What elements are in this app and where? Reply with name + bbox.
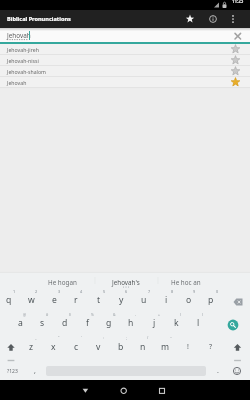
- button[interactable]: u: [133, 288, 155, 311]
- button[interactable]: c: [65, 335, 87, 358]
- staticText: ?: [209, 342, 213, 352]
- staticText: c: [74, 341, 79, 353]
- staticText: g: [106, 317, 112, 329]
- staticText: 7: [148, 289, 151, 294]
- button[interactable]: Jehovah-shalom: [0, 66, 250, 77]
- button[interactable]: [229, 28, 247, 44]
- staticText: n: [140, 341, 146, 353]
- button[interactable]: v: [87, 335, 109, 358]
- staticText: 1: [13, 289, 16, 294]
- button[interactable]: z: [20, 335, 42, 358]
- button[interactable]: [182, 10, 198, 28]
- button[interactable]: e: [43, 288, 65, 311]
- staticText: w: [28, 294, 35, 306]
- staticText: i: [165, 294, 168, 306]
- button[interactable]: He hoc an: [146, 273, 226, 291]
- button[interactable]: !: [177, 335, 199, 358]
- button[interactable]: g: [98, 311, 120, 334]
- staticText: +: [158, 312, 160, 317]
- button[interactable]: o: [178, 288, 200, 311]
- button[interactable]: b: [110, 335, 132, 358]
- staticText: y: [119, 294, 124, 306]
- staticText: k: [174, 317, 179, 329]
- staticText: s: [40, 317, 45, 329]
- button[interactable]: a: [9, 311, 31, 334]
- staticText: .: [217, 366, 219, 376]
- staticText: @: [23, 312, 27, 317]
- staticText: d: [62, 317, 68, 329]
- button[interactable]: t: [88, 288, 110, 311]
- button[interactable]: s: [31, 311, 53, 334]
- button[interactable]: Jehovah-jireh: [0, 44, 250, 55]
- staticText: z: [29, 341, 34, 353]
- staticText: t: [97, 294, 101, 306]
- staticText: r: [74, 294, 78, 306]
- staticText: p: [208, 294, 214, 306]
- button[interactable]: Jehovah-nissi: [0, 55, 250, 66]
- staticText: h: [128, 317, 134, 329]
- staticText: 6: [125, 289, 128, 294]
- staticText: :: [103, 335, 104, 340]
- button[interactable]: j: [143, 311, 165, 334]
- button[interactable]: h: [120, 311, 142, 334]
- staticText: f: [86, 317, 89, 329]
- button[interactable]: w: [20, 288, 42, 311]
- staticText: j: [153, 317, 156, 329]
- button[interactable]: [226, 360, 248, 380]
- staticText: ': [81, 335, 82, 340]
- button[interactable]: Jehovah's: [86, 273, 166, 291]
- staticText: Jehovah-jireh: [7, 46, 39, 53]
- staticText: &: [113, 312, 116, 317]
- staticText: /: [147, 335, 149, 340]
- button[interactable]: .: [207, 359, 229, 382]
- button[interactable]: d: [54, 311, 76, 334]
- staticText: ~: [170, 335, 172, 340]
- staticText: Jehovah-shalom: [7, 68, 46, 75]
- staticText: 5: [103, 289, 106, 294]
- staticText: q: [6, 294, 12, 306]
- button[interactable]: [73, 380, 97, 400]
- button[interactable]: [205, 10, 221, 28]
- button[interactable]: m: [154, 335, 176, 358]
- button[interactable]: n: [132, 335, 154, 358]
- button[interactable]: He hogan: [22, 273, 102, 291]
- staticText: 3: [58, 289, 61, 294]
- staticText: 4: [80, 289, 83, 294]
- button[interactable]: [226, 10, 240, 28]
- button[interactable]: i: [155, 288, 177, 311]
- staticText: Jehovah: [7, 31, 31, 40]
- staticText: m: [161, 341, 170, 353]
- button[interactable]: [226, 290, 249, 313]
- staticText: 9: [193, 289, 196, 294]
- staticText: x: [51, 341, 56, 353]
- button[interactable]: [0, 334, 24, 364]
- button[interactable]: q: [0, 288, 20, 311]
- button[interactable]: [112, 380, 136, 400]
- staticText: Jehovah's: [112, 278, 140, 287]
- button[interactable]: l: [187, 311, 209, 334]
- button[interactable]: [150, 380, 174, 400]
- staticText: l: [197, 317, 200, 329]
- button[interactable]: f: [76, 311, 98, 334]
- staticText: ": [58, 335, 60, 340]
- staticText: ?123: [7, 368, 18, 375]
- button[interactable]: ,: [24, 359, 46, 382]
- button[interactable]: ?123: [0, 362, 52, 380]
- button[interactable]: p: [200, 288, 222, 311]
- button[interactable]: [222, 314, 244, 336]
- button[interactable]: ?: [200, 335, 222, 358]
- button[interactable]: Jehovah: [0, 77, 250, 88]
- staticText: (: [180, 312, 182, 317]
- button[interactable]: r: [65, 288, 87, 311]
- staticText: He hogan: [48, 278, 77, 287]
- staticText: !: [187, 342, 189, 352]
- button[interactable]: y: [110, 288, 132, 311]
- staticText: b: [118, 341, 124, 353]
- button[interactable]: [226, 334, 250, 364]
- button[interactable]: x: [42, 335, 64, 358]
- button[interactable]: k: [165, 311, 187, 334]
- staticText: ;: [126, 335, 127, 340]
- staticText: $: [69, 312, 71, 317]
- staticText: -: [135, 312, 137, 317]
